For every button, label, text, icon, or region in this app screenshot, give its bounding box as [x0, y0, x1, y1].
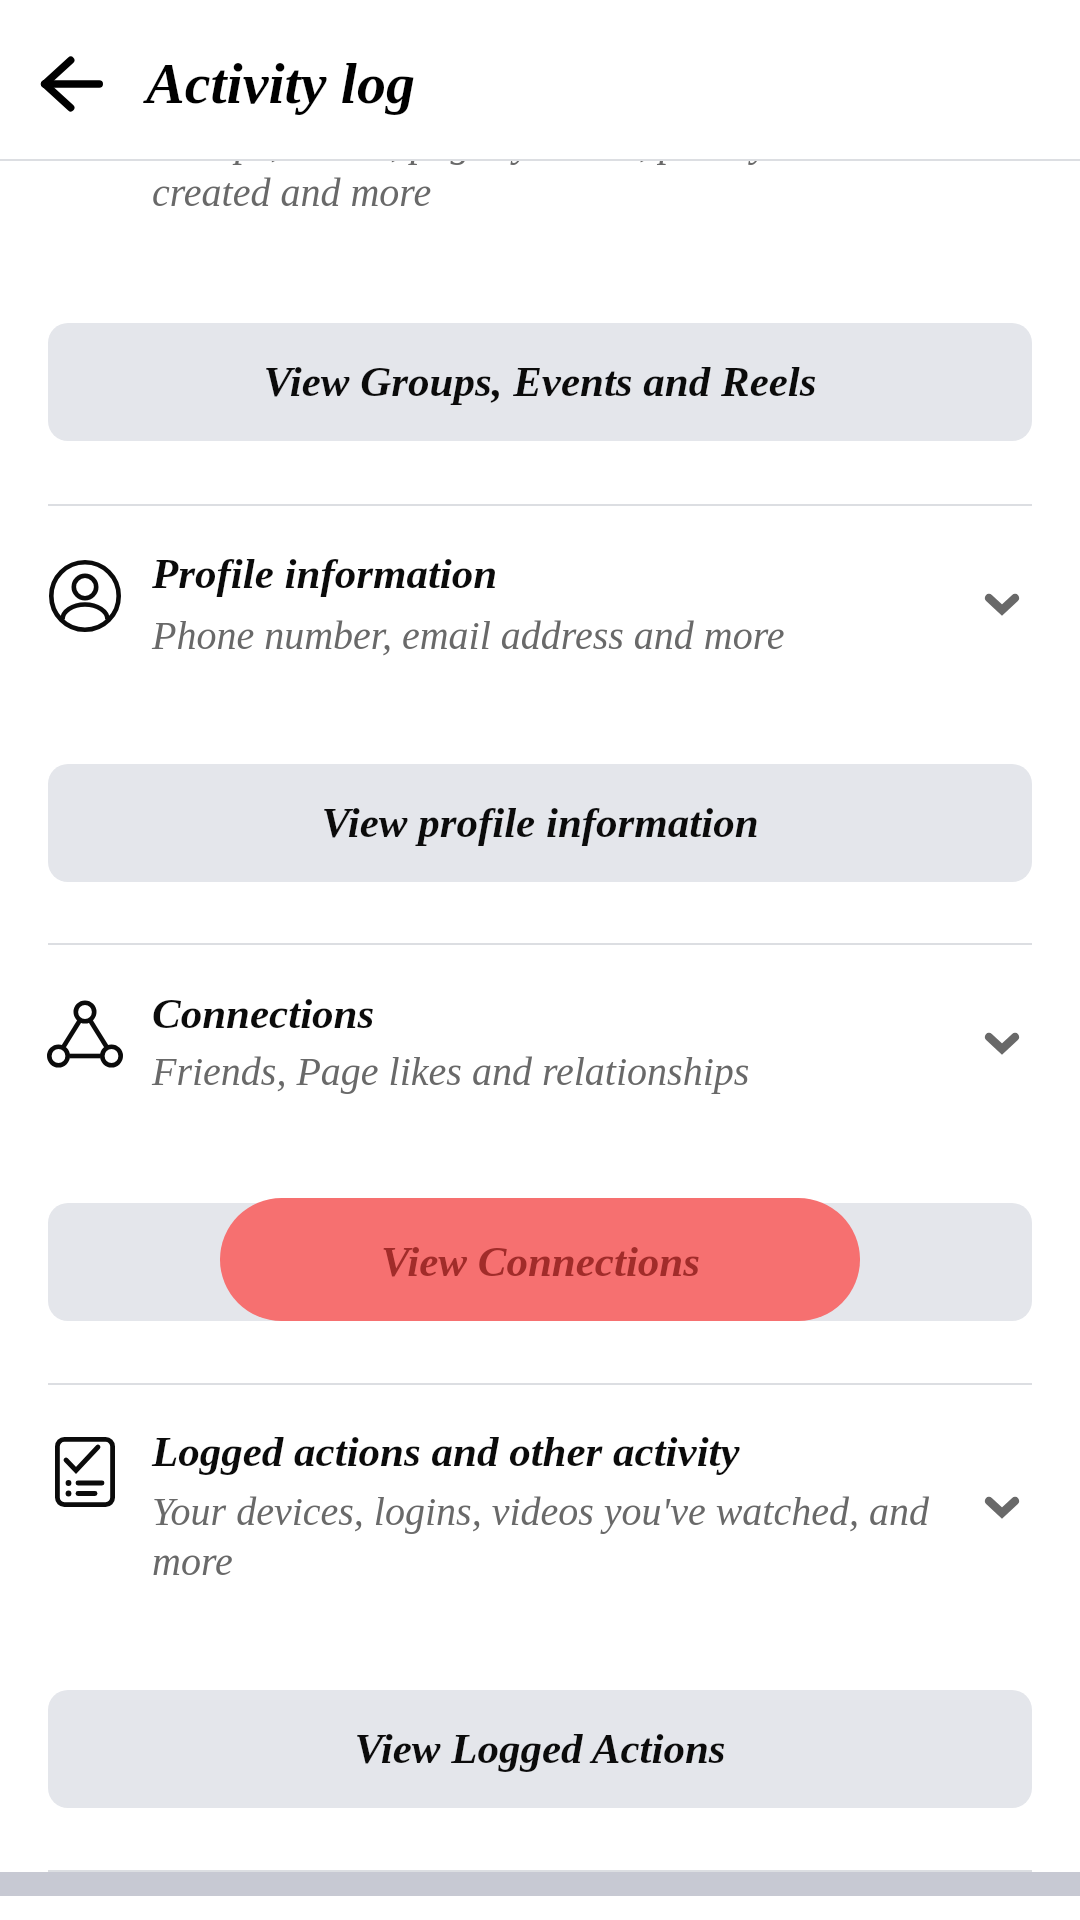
- staticText: View Logged Actions: [354, 1725, 726, 1773]
- staticText: Friends, Page likes and relationships: [152, 1049, 750, 1093]
- button[interactable]: View profile information: [48, 764, 1032, 882]
- staticText: Activity log: [146, 51, 415, 115]
- button[interactable]: Logged actions and other activity: [0, 1385, 1080, 1690]
- staticText: Connections: [152, 990, 375, 1038]
- button[interactable]: Expand Logged actions and other activity: [978, 1483, 1026, 1531]
- button[interactable]: View Logged Actions: [48, 1690, 1032, 1808]
- staticText: Phone number, email address and more: [152, 613, 785, 657]
- button[interactable]: Expand Connections: [978, 1019, 1026, 1067]
- staticText: Logged actions and other activity: [152, 1428, 740, 1476]
- staticText: View profile information: [321, 799, 759, 847]
- button[interactable]: Profile information: [0, 506, 1080, 764]
- button[interactable]: View Connections: [48, 1203, 1032, 1321]
- button[interactable]: View Groups, Events and Reels: [48, 323, 1032, 441]
- button[interactable]: Expand Profile information: [978, 580, 1026, 628]
- staticText: Groups, events, pages you like, posts yo…: [152, 120, 854, 214]
- button[interactable]: Connections: [0, 945, 1080, 1203]
- staticText: Your devices, logins, videos you've watc…: [152, 1489, 952, 1583]
- staticText: Profile information: [152, 550, 498, 598]
- staticText: View Connections: [381, 1238, 700, 1286]
- button[interactable]: Back: [36, 48, 108, 120]
- staticText: View Groups, Events and Reels: [263, 358, 817, 406]
